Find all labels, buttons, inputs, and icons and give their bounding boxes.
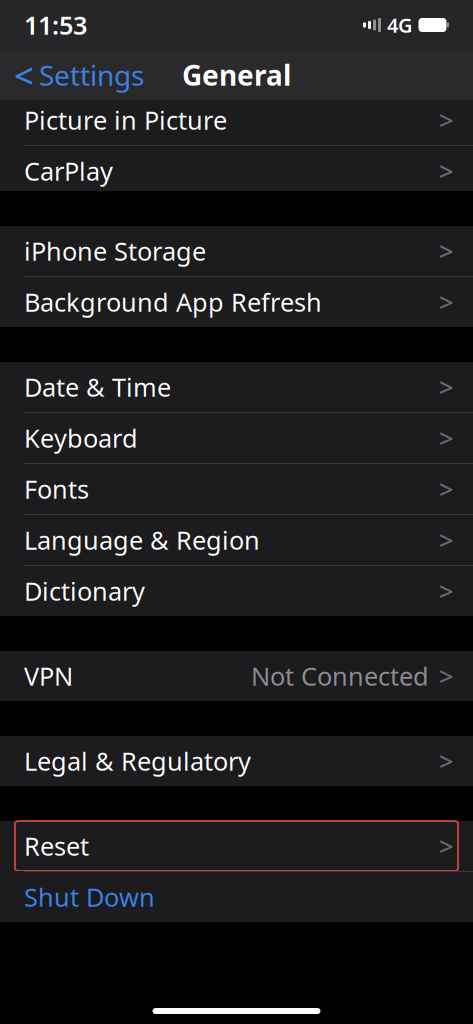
staticText: > [439,523,453,557]
button[interactable]: Shut Down [0,872,473,922]
staticText: Not Connected [251,659,429,693]
staticText: Language & Region [24,523,260,557]
button[interactable]: < [0,46,144,104]
staticText: > [439,421,453,455]
staticText: > [439,472,453,506]
staticText: Background App Refresh [24,285,322,319]
staticText: > [439,103,453,137]
staticText: Legal & Regulatory [24,744,251,778]
staticText: > [439,154,453,188]
staticText: Picture in Picture [24,103,227,137]
staticText: General [182,56,291,94]
staticText: Fonts [24,472,89,506]
staticText: > [439,370,453,404]
staticText: > [439,285,453,319]
staticText: 4G [387,12,413,38]
staticText: > [439,829,453,863]
button[interactable]: Background App Refresh [0,277,473,327]
staticText: CarPlay [24,154,113,188]
button[interactable]: VPN [0,651,473,701]
staticText: > [439,574,453,608]
button[interactable]: Legal & Regulatory [0,736,473,786]
staticText: Dictionary [24,574,145,608]
button[interactable]: Picture in Picture [0,95,473,145]
staticText: 11:53 [24,8,87,42]
button[interactable]: Keyboard [0,413,473,463]
staticText: > [439,659,453,693]
staticText: Keyboard [24,421,138,455]
button[interactable]: Reset [0,821,473,871]
staticText: > [439,234,453,268]
staticText: < [14,52,34,98]
button[interactable]: Dictionary [0,566,473,616]
staticText: Date & Time [24,370,171,404]
staticText: VPN [24,659,73,693]
button[interactable]: Date & Time [0,362,473,412]
staticText: > [439,744,453,778]
button[interactable]: iPhone Storage [0,226,473,276]
staticText: iPhone Storage [24,234,206,268]
button[interactable]: Language & Region [0,515,473,565]
staticText: Shut Down [24,880,155,914]
button[interactable]: Fonts [0,464,473,514]
button[interactable]: CarPlay [0,146,473,196]
staticText: Settings [39,56,144,94]
staticText: Reset [24,829,89,863]
